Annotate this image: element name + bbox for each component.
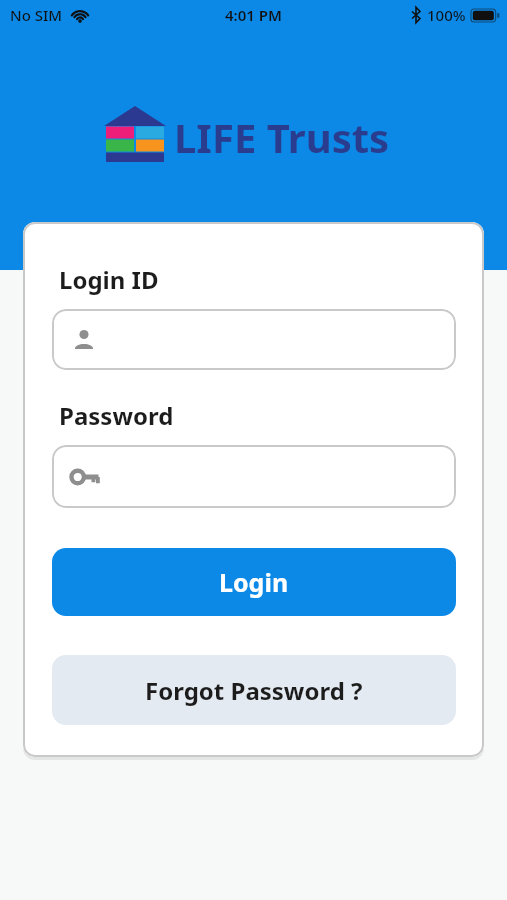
staticText: Login xyxy=(219,565,289,599)
staticText: LIFE Trusts xyxy=(174,110,390,164)
staticText: 4:01 PM xyxy=(225,5,282,25)
staticText: No SIM xyxy=(10,5,63,25)
button[interactable] xyxy=(52,309,456,370)
staticText: Forgot Password ? xyxy=(145,674,363,707)
button[interactable] xyxy=(52,445,456,508)
staticText: Password xyxy=(59,399,174,432)
button[interactable]: Forgot Password ? xyxy=(52,655,456,725)
button[interactable]: Login xyxy=(52,548,456,616)
staticText: Login ID xyxy=(59,263,159,296)
staticText: 100% xyxy=(427,5,466,25)
